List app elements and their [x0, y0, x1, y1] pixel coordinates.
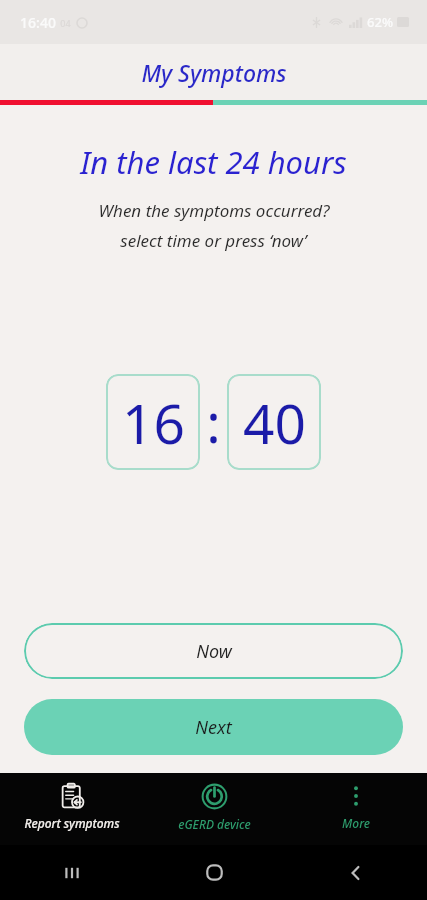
- staticText: Report symptoms: [24, 815, 120, 831]
- staticText: :: [206, 385, 221, 459]
- button[interactable]: Recent apps: [0, 845, 143, 900]
- button[interactable]: eGERD device: [143, 773, 285, 845]
- staticText: When the symptoms occurred?: [98, 199, 330, 222]
- staticText: 04: [60, 17, 71, 29]
- staticText: 16:40: [20, 13, 56, 32]
- button[interactable]: 16: [106, 374, 200, 470]
- staticText: Next: [195, 715, 232, 740]
- button[interactable]: Back: [285, 845, 427, 900]
- other: Report symptoms: [59, 783, 85, 809]
- staticText: 62%: [367, 13, 393, 31]
- staticText: 40: [243, 385, 306, 460]
- button[interactable]: Home: [143, 845, 285, 900]
- button[interactable]: Next: [24, 699, 403, 755]
- staticText: More: [342, 815, 370, 831]
- other: More: [343, 783, 369, 809]
- button[interactable]: More: [285, 773, 427, 845]
- button[interactable]: 40: [227, 374, 321, 470]
- staticText: In the last 24 hours: [80, 141, 347, 183]
- staticText: eGERD device: [178, 816, 251, 832]
- button[interactable]: Report symptoms: [0, 773, 143, 845]
- staticText: Now: [196, 639, 232, 664]
- staticText: select time or press ‘now’: [120, 229, 307, 252]
- staticText: 16: [122, 385, 185, 460]
- button[interactable]: Now: [24, 623, 403, 679]
- staticText: My Symptoms: [141, 57, 287, 88]
- other: eGERD device: [201, 783, 228, 810]
